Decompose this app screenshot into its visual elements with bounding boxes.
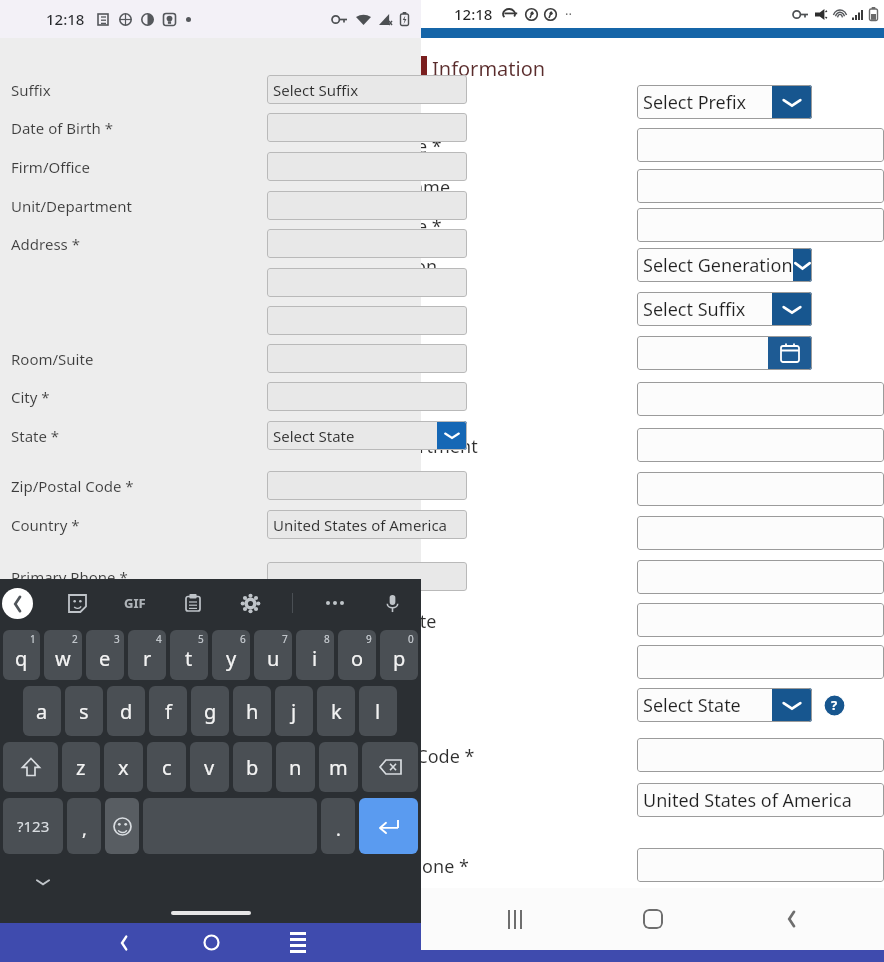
- button[interactable]: Emoji: [105, 798, 139, 854]
- button[interactable]: [267, 471, 467, 500]
- button[interactable]: Select Suffix: [637, 292, 812, 326]
- staticText: Firm/Office: [11, 157, 91, 177]
- button[interactable]: [637, 645, 884, 679]
- button[interactable]: a: [23, 686, 61, 736]
- button[interactable]: Select Prefix: [637, 85, 812, 119]
- button[interactable]: 3: [86, 630, 124, 680]
- button[interactable]: [267, 562, 467, 591]
- button[interactable]: Back: [767, 895, 815, 943]
- button[interactable]: [267, 268, 467, 297]
- staticText: Select Generation: [643, 253, 793, 278]
- button[interactable]: 1: [3, 630, 40, 680]
- staticText: h: [246, 698, 259, 725]
- button[interactable]: [267, 191, 467, 220]
- button[interactable]: m: [319, 742, 358, 792]
- staticText: Select Prefix: [643, 90, 747, 115]
- button[interactable]: [267, 344, 467, 373]
- button[interactable]: Hide keyboard: [30, 869, 56, 895]
- staticText: a: [36, 698, 48, 725]
- button[interactable]: x: [104, 742, 143, 792]
- button[interactable]: Shift: [3, 742, 58, 792]
- staticText: 12:18: [46, 9, 85, 29]
- button[interactable]: [637, 169, 884, 203]
- button[interactable]: [637, 848, 884, 882]
- button[interactable]: 0: [380, 630, 418, 680]
- button[interactable]: l: [359, 686, 397, 736]
- button[interactable]: Home: [629, 895, 677, 943]
- button[interactable]: Delete: [362, 742, 418, 792]
- staticText: 9: [366, 632, 372, 646]
- button[interactable]: [267, 229, 467, 258]
- button[interactable]: Voice input: [377, 588, 407, 618]
- staticText: t: [185, 645, 193, 672]
- button[interactable]: [637, 382, 884, 416]
- button[interactable]: Clipboard: [178, 588, 208, 618]
- button[interactable]: b: [233, 742, 272, 792]
- button[interactable]: United States of America: [637, 783, 884, 817]
- button[interactable]: c: [147, 742, 186, 792]
- staticText: m: [329, 754, 348, 781]
- button[interactable]: v: [190, 742, 229, 792]
- button[interactable]: [637, 560, 884, 594]
- button[interactable]: Select Suffix: [267, 75, 467, 104]
- button[interactable]: s: [65, 686, 103, 736]
- button[interactable]: k: [317, 686, 355, 736]
- button[interactable]: GIF: [120, 590, 150, 616]
- button[interactable]: n: [276, 742, 315, 792]
- button[interactable]: [637, 516, 884, 550]
- button[interactable]: d: [107, 686, 145, 736]
- button[interactable]: [637, 472, 884, 506]
- button[interactable]: Home: [191, 923, 231, 962]
- button[interactable]: ,: [67, 798, 101, 854]
- button[interactable]: Settings: [235, 588, 265, 618]
- button[interactable]: [267, 152, 467, 181]
- button[interactable]: 8: [296, 630, 334, 680]
- button[interactable]: f: [149, 686, 187, 736]
- button[interactable]: Select Generation: [637, 248, 812, 282]
- button[interactable]: 7: [254, 630, 292, 680]
- button[interactable]: Recents: [491, 895, 539, 943]
- button[interactable]: Enter: [359, 798, 418, 854]
- staticText: u: [267, 645, 280, 672]
- staticText: g: [204, 698, 217, 725]
- button[interactable]: Select State: [637, 688, 812, 722]
- button[interactable]: [267, 113, 467, 142]
- button[interactable]: 2: [44, 630, 82, 680]
- button[interactable]: More: [320, 588, 350, 618]
- button[interactable]: g: [191, 686, 229, 736]
- button[interactable]: 6: [212, 630, 250, 680]
- button[interactable]: .: [321, 798, 355, 854]
- staticText: 6: [240, 632, 246, 646]
- staticText: 0: [408, 632, 414, 646]
- staticText: ite: [415, 609, 437, 634]
- button[interactable]: 9: [338, 630, 376, 680]
- staticText: e: [99, 645, 111, 672]
- button[interactable]: z: [62, 742, 100, 792]
- button[interactable]: United States of America: [267, 510, 467, 539]
- button[interactable]: [267, 306, 467, 335]
- button[interactable]: [637, 208, 884, 242]
- staticText: s: [79, 698, 89, 725]
- button[interactable]: [637, 128, 884, 162]
- button[interactable]: 5: [170, 630, 208, 680]
- button[interactable]: [637, 603, 884, 637]
- button[interactable]: Back: [2, 588, 33, 619]
- button[interactable]: Stickers: [62, 588, 92, 618]
- button[interactable]: Help: [823, 694, 845, 716]
- button[interactable]: Recents: [278, 923, 318, 962]
- button[interactable]: [637, 428, 884, 462]
- button[interactable]: 4: [128, 630, 166, 680]
- staticText: Room/Suite: [11, 349, 94, 369]
- button[interactable]: h: [233, 686, 271, 736]
- staticText: c: [162, 754, 172, 781]
- button[interactable]: [267, 382, 467, 411]
- button[interactable]: ?123: [3, 798, 63, 854]
- staticText: Unit/Department: [11, 196, 132, 216]
- button[interactable]: j: [275, 686, 313, 736]
- staticText: d: [120, 698, 133, 725]
- button[interactable]: [637, 738, 884, 772]
- button[interactable]: Back: [104, 923, 144, 962]
- button[interactable]: Pick date: [637, 336, 812, 370]
- button[interactable]: Select State: [267, 421, 467, 450]
